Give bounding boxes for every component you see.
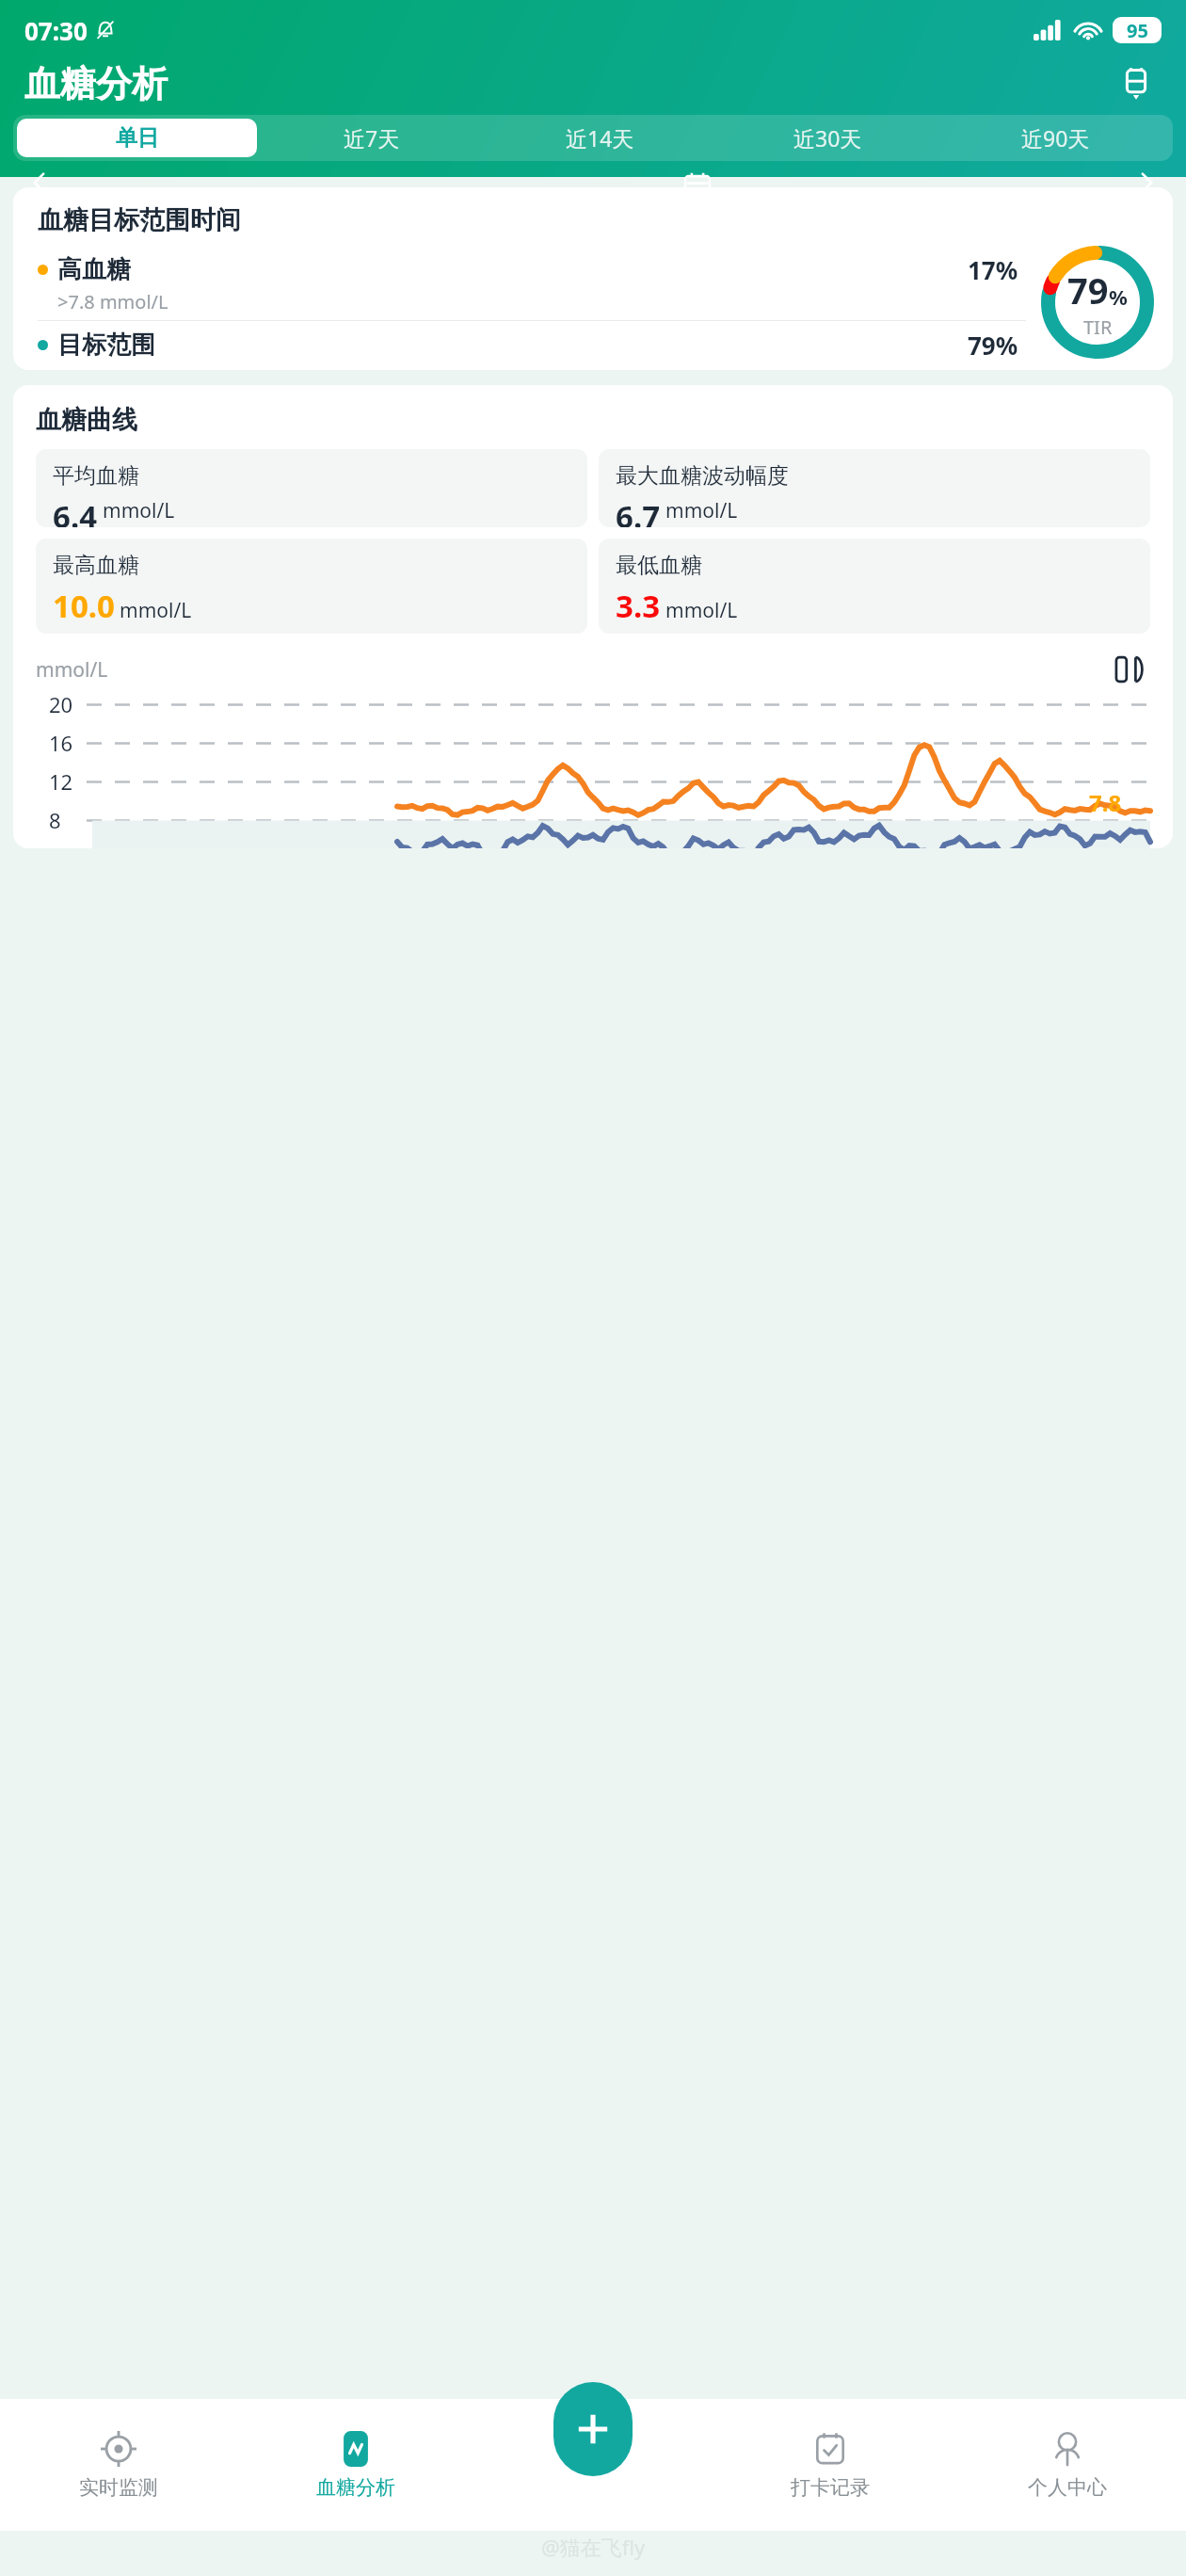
staticText: 6.4 xyxy=(53,495,98,527)
button[interactable]: 最高血糖 xyxy=(36,539,587,634)
staticText: 79 xyxy=(1067,266,1109,314)
button[interactable]: 平均血糖 xyxy=(36,449,587,527)
staticText: 12 xyxy=(49,767,73,796)
staticText: 血糖分析 xyxy=(316,2475,395,2500)
staticText: 近30天 xyxy=(793,123,862,153)
staticText: 10.0 xyxy=(53,585,115,627)
staticText: 实时监测 xyxy=(79,2475,158,2500)
staticText: mmol/L xyxy=(665,597,738,624)
staticText: 79% xyxy=(968,329,1018,362)
staticText: 近90天 xyxy=(1021,123,1090,153)
button[interactable]: Rotate chart xyxy=(1109,649,1150,690)
button[interactable]: 实时监测 xyxy=(0,2399,237,2531)
staticText: mmol/L xyxy=(36,656,108,684)
button[interactable]: 近14天 xyxy=(486,119,713,157)
staticText: TIR xyxy=(1083,314,1113,340)
staticText: 个人中心 xyxy=(1028,2475,1107,2500)
staticText: 最低血糖 xyxy=(616,552,702,579)
button[interactable]: 近90天 xyxy=(941,119,1169,157)
button[interactable]: 2026年2月25日 xyxy=(472,170,713,177)
staticText: >7.8 mmol/L xyxy=(57,289,168,314)
button[interactable]: 单日 xyxy=(17,119,257,157)
button[interactable]: 最大血糖波动幅度 xyxy=(599,449,1150,527)
button[interactable]: 高血糖 xyxy=(38,246,1032,321)
button[interactable]: 近30天 xyxy=(713,119,941,157)
staticText: 95 xyxy=(1127,18,1148,43)
staticText: 20 xyxy=(49,690,73,718)
button[interactable]: 打卡记录 xyxy=(712,2399,949,2531)
staticText: 血糖曲线 xyxy=(36,404,137,436)
button[interactable]: 近7天 xyxy=(257,119,486,157)
staticText: mmol/L xyxy=(120,597,192,624)
staticText: @猫在飞fly xyxy=(541,2533,646,2561)
staticText: 7.8 xyxy=(1089,787,1122,818)
staticText: 最高血糖 xyxy=(53,552,139,579)
button[interactable]: 个人中心 xyxy=(949,2399,1186,2531)
staticText: mmol/L xyxy=(103,497,175,524)
staticText: % xyxy=(1109,282,1128,311)
staticText: 近7天 xyxy=(344,123,400,153)
staticText: 最大血糖波动幅度 xyxy=(616,462,789,490)
staticText: 3.3 xyxy=(616,585,661,627)
button[interactable]: 最低血糖 xyxy=(599,539,1150,634)
button[interactable]: Previous day xyxy=(17,170,62,177)
button[interactable]: Device xyxy=(1111,58,1162,109)
button[interactable]: Next day xyxy=(1124,170,1169,177)
staticText: mmol/L xyxy=(665,497,738,524)
staticText: 17% xyxy=(968,253,1018,286)
staticText: 8 xyxy=(49,806,61,834)
staticText: 16 xyxy=(49,729,73,757)
button[interactable]: Add record xyxy=(553,2382,633,2476)
button[interactable]: 血糖分析 xyxy=(237,2399,474,2531)
staticText: 高血糖 xyxy=(57,254,131,285)
staticText: 近14天 xyxy=(566,123,634,153)
staticText: 打卡记录 xyxy=(791,2475,870,2500)
staticText: 血糖目标范围时间 xyxy=(38,204,241,236)
staticText: 目标范围 xyxy=(57,330,155,361)
staticText: 6.7 xyxy=(616,495,661,527)
staticText: 平均血糖 xyxy=(53,462,139,490)
staticText: 血糖分析 xyxy=(24,61,168,106)
staticText: 单日 xyxy=(116,124,159,152)
button[interactable]: 目标范围 xyxy=(38,321,1032,370)
staticText: 07:30 xyxy=(24,14,88,47)
